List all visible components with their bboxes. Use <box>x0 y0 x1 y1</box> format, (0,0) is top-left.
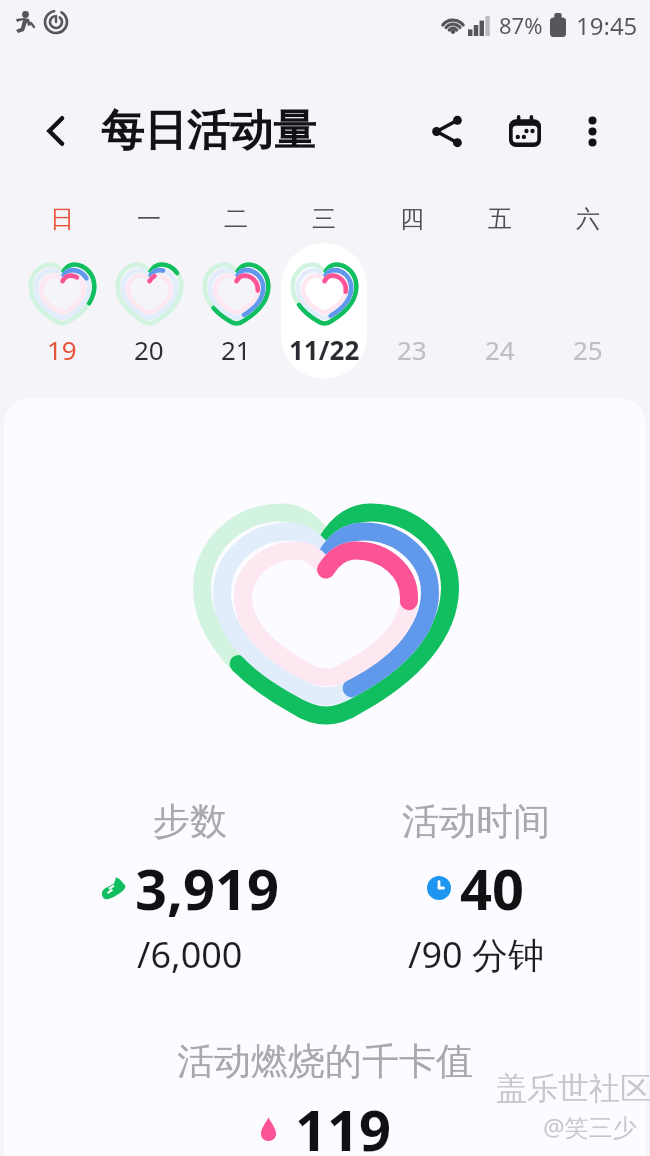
button[interactable]: 25 <box>545 243 631 379</box>
button[interactable]: 20 <box>106 243 192 379</box>
button[interactable]: More options <box>567 106 617 156</box>
button[interactable]: 步数 <box>30 798 350 979</box>
button[interactable]: 21 <box>193 243 279 379</box>
staticText: 20 <box>134 332 164 367</box>
staticText: 三 <box>312 204 336 234</box>
button[interactable]: Back <box>30 104 84 158</box>
staticText: 19:45 <box>576 9 638 42</box>
staticText: 24 <box>485 332 515 367</box>
staticText: 四 <box>400 204 424 234</box>
staticText: 日 <box>50 204 74 234</box>
staticText: 23 <box>397 332 427 367</box>
staticText: 11/22 <box>289 332 360 367</box>
button[interactable]: 19 <box>19 243 105 379</box>
staticText: 盖乐世社区 <box>496 1069 650 1108</box>
staticText: 一 <box>137 204 161 234</box>
staticText: 3,919 <box>135 850 280 926</box>
button[interactable]: 11/22 <box>281 243 367 379</box>
button[interactable]: 活动燃烧的千卡值 <box>0 1038 650 1156</box>
staticText: 40 <box>460 850 525 926</box>
button[interactable]: 活动时间 <box>316 798 636 979</box>
staticText: 二 <box>224 204 248 234</box>
staticText: 五 <box>488 204 512 234</box>
staticText: 21 <box>221 332 251 367</box>
staticText: /6,000 <box>137 930 243 979</box>
staticText: 119 <box>295 1091 392 1156</box>
button[interactable]: 24 <box>457 243 543 379</box>
button[interactable]: Calendar <box>497 103 553 159</box>
button[interactable]: Share <box>419 103 475 159</box>
staticText: 活动时间 <box>402 798 550 845</box>
staticText: 25 <box>573 332 603 367</box>
staticText: 六 <box>576 204 600 234</box>
staticText: 活动燃烧的千卡值 <box>177 1038 473 1085</box>
staticText: 每日活动量 <box>101 104 316 158</box>
staticText: 87% <box>499 10 543 40</box>
staticText: 步数 <box>153 798 227 845</box>
staticText: @笑三少 <box>543 1110 637 1143</box>
staticText: /90 分钟 <box>408 930 544 979</box>
button[interactable]: 23 <box>369 243 455 379</box>
staticText: 19 <box>47 332 77 367</box>
